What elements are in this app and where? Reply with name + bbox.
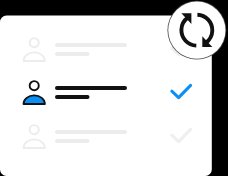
button[interactable]: List item 3 (18, 122, 194, 158)
button[interactable]: List item 2 (18, 78, 194, 114)
button[interactable]: Sync (168, 2, 225, 59)
button[interactable]: List item 1 (18, 35, 194, 71)
